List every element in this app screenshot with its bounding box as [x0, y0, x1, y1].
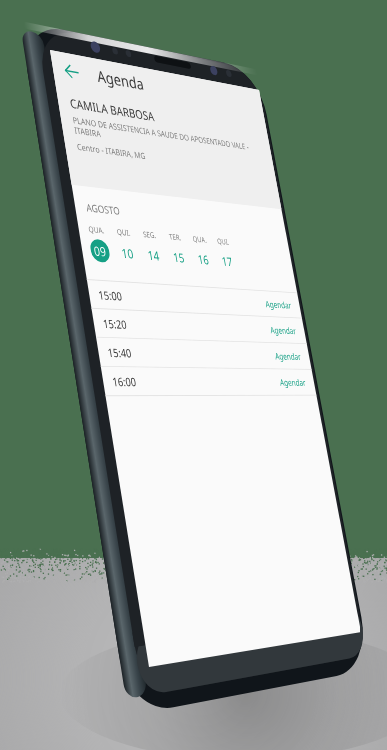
button[interactable]: TER.: [133, 219, 175, 267]
staticText: Agendar: [295, 334, 344, 350]
button[interactable]: QUA.: [175, 219, 217, 267]
button[interactable]: 16:00: [0, 395, 360, 429]
button[interactable]: 15:20: [0, 325, 360, 359]
button[interactable]: Back: [7, 2, 49, 44]
staticText: Agendar: [295, 369, 344, 385]
button[interactable]: SEG.: [91, 219, 133, 267]
button[interactable]: 15:40: [0, 360, 360, 394]
staticText: AGOSTO: [17, 190, 69, 208]
staticText: SEG.: [101, 219, 123, 233]
staticText: Centro - ITABIRA, MG: [18, 114, 127, 129]
staticText: CAMILA BARBOSA: [18, 55, 154, 77]
staticText: 10: [61, 242, 80, 264]
staticText: PLANO DE ASSISTENCIA A SAUDE DO APOSENTA…: [18, 80, 352, 108]
button[interactable]: QUI.: [49, 219, 91, 267]
staticText: 14: [103, 242, 122, 264]
button[interactable]: 15:00: [0, 290, 360, 324]
staticText: 16: [187, 242, 206, 264]
staticText: Agenda: [69, 9, 145, 38]
staticText: Agendar: [295, 404, 344, 420]
staticText: 17: [229, 242, 248, 264]
button[interactable]: QUI.: [217, 219, 259, 267]
staticText: QUI.: [59, 219, 81, 233]
staticText: TER.: [144, 219, 165, 233]
staticText: Agendar: [295, 299, 344, 315]
staticText: 15: [145, 242, 164, 264]
